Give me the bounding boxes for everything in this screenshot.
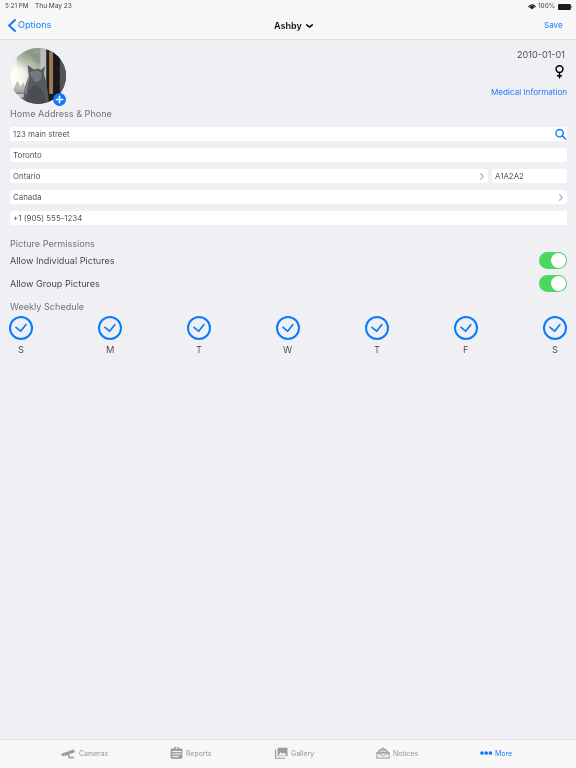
button[interactable]: M xyxy=(96,314,124,354)
button[interactable]: W xyxy=(274,314,302,354)
staticText: Thu May 23 xyxy=(35,2,72,10)
staticText: S xyxy=(18,344,24,355)
staticText: Cameras xyxy=(79,749,109,757)
button[interactable]: Ashby xyxy=(270,18,317,33)
staticText: Ontario xyxy=(13,171,41,181)
staticText: 123 main street xyxy=(13,129,70,139)
staticText: Home Address & Phone xyxy=(10,108,112,119)
staticText: Picture Permissions xyxy=(10,238,95,249)
button[interactable]: Cameras xyxy=(61,745,109,761)
staticText: Toronto xyxy=(13,150,42,160)
button[interactable]: Canada xyxy=(10,190,567,204)
staticText: Save xyxy=(544,20,563,30)
button[interactable]: T xyxy=(185,314,213,354)
button[interactable]: F xyxy=(452,314,480,354)
button[interactable]: S xyxy=(7,314,35,354)
staticText: S xyxy=(552,344,558,355)
button[interactable]: Gallery xyxy=(275,745,315,761)
button[interactable]: Notices xyxy=(376,745,419,761)
button[interactable]: Allow Individual Pictures xyxy=(0,252,576,269)
button[interactable]: More xyxy=(480,745,512,761)
staticText: T xyxy=(374,344,381,355)
staticText: Weekly Schedule xyxy=(10,301,85,312)
staticText: Options xyxy=(18,19,52,30)
staticText: A1A2A2 xyxy=(495,171,524,181)
button[interactable]: A1A2A2 xyxy=(492,169,567,183)
staticText: W xyxy=(283,344,293,355)
button[interactable]: Save xyxy=(538,17,569,33)
staticText: 2010-01-01 xyxy=(517,49,565,60)
button[interactable]: Toronto xyxy=(10,148,567,162)
button[interactable]: Ontario xyxy=(10,169,488,183)
button[interactable]: Reports xyxy=(170,745,212,761)
staticText: Reports xyxy=(186,749,212,757)
staticText: Medical Information xyxy=(491,87,568,97)
button[interactable]: +1 (905) 555-1234 xyxy=(10,211,567,225)
staticText: 100% xyxy=(538,2,555,10)
staticText: Allow Group Pictures xyxy=(10,278,100,289)
staticText: More xyxy=(495,749,512,757)
staticText: Ashby xyxy=(274,20,302,31)
staticText: Allow Individual Pictures xyxy=(10,255,115,266)
button[interactable]: S xyxy=(541,314,569,354)
staticText: Gallery xyxy=(291,749,315,757)
button[interactable]: Profile photo xyxy=(10,48,66,104)
staticText: M xyxy=(106,344,115,355)
button[interactable]: Medical Information xyxy=(488,85,571,99)
button[interactable]: T xyxy=(363,314,391,354)
button[interactable]: 123 main street xyxy=(10,127,567,141)
staticText: F xyxy=(463,344,469,355)
staticText: 5:21 PM xyxy=(5,2,29,10)
button[interactable]: Options xyxy=(4,16,56,33)
staticText: T xyxy=(196,344,203,355)
staticText: Canada xyxy=(13,192,42,202)
staticText: Notices xyxy=(393,749,419,757)
button[interactable]: Add photo xyxy=(53,93,66,106)
button[interactable]: Allow Group Pictures xyxy=(0,275,576,292)
staticText: +1 (905) 555-1234 xyxy=(13,213,83,223)
